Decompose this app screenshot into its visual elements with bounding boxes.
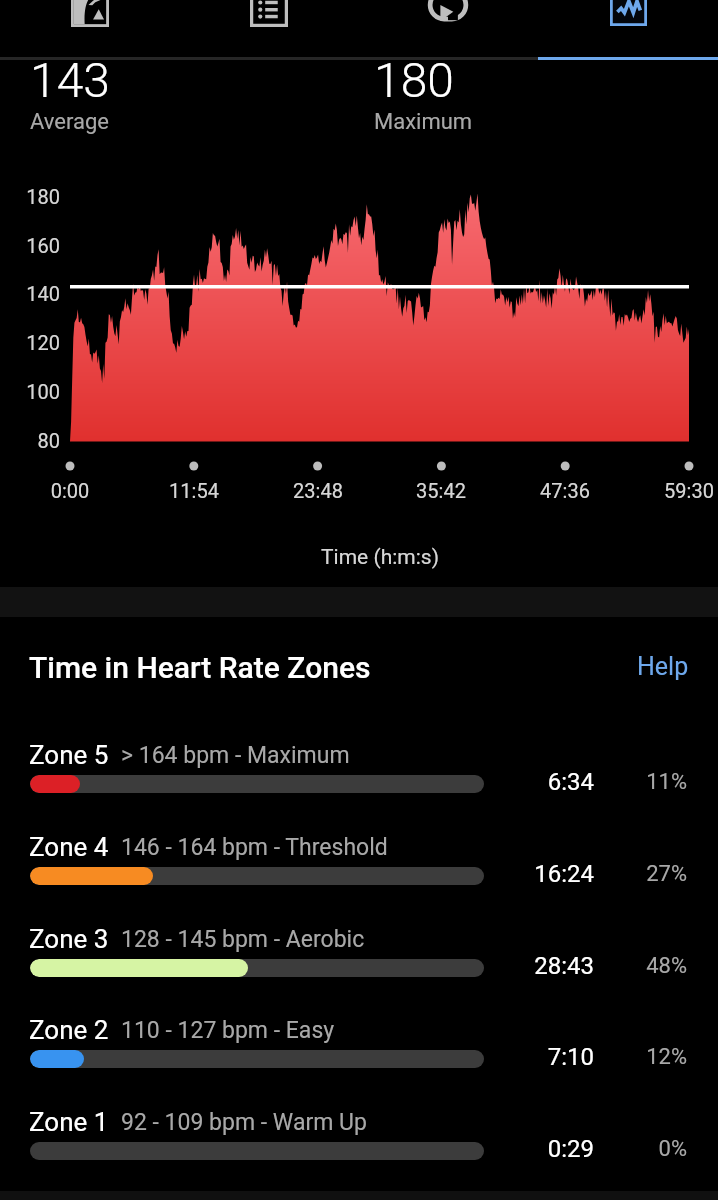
staticText: Zone 5: [29, 740, 109, 770]
staticText: 180: [374, 52, 454, 108]
staticText: Time in Heart Rate Zones: [29, 650, 371, 685]
staticText: 28:43: [474, 952, 594, 980]
staticText: 120: [0, 331, 60, 354]
staticText: 11%: [607, 769, 687, 795]
button[interactable]: Help: [589, 644, 689, 688]
staticText: 11:54: [134, 479, 254, 502]
staticText: 80: [0, 429, 60, 452]
staticText: Zone 1: [29, 1107, 109, 1137]
staticText: Maximum: [374, 109, 473, 135]
button[interactable]: Zone 3: [0, 919, 718, 1007]
staticText: 0:00: [10, 479, 130, 502]
staticText: 110 - 127 bpm - Easy: [121, 1017, 335, 1044]
staticText: 16:24: [474, 860, 594, 888]
staticText: Time (h:m:s): [180, 545, 580, 570]
staticText: 100: [0, 380, 60, 403]
staticText: 48%: [607, 953, 687, 979]
button[interactable]: Details: [179, 0, 358, 57]
staticText: 146 - 164 bpm - Threshold: [121, 834, 388, 861]
button[interactable]: Zone 4: [0, 827, 718, 915]
button[interactable]: Charts: [538, 0, 718, 57]
staticText: Zone 2: [29, 1015, 109, 1045]
staticText: 92 - 109 bpm - Warm Up: [121, 1109, 367, 1136]
staticText: 12%: [607, 1044, 687, 1070]
button[interactable]: Zone 1: [0, 1102, 718, 1190]
staticText: 59:30: [629, 479, 718, 502]
staticText: 35:42: [381, 479, 501, 502]
staticText: Zone 3: [29, 924, 109, 954]
staticText: 0%: [607, 1136, 687, 1162]
staticText: 160: [0, 234, 60, 257]
staticText: 27%: [607, 861, 687, 887]
button[interactable]: Zone 5: [0, 735, 718, 823]
staticText: Average: [30, 109, 110, 135]
button[interactable]: Map: [0, 0, 179, 57]
staticText: 47:36: [505, 479, 625, 502]
staticText: Zone 4: [29, 832, 109, 862]
staticText: 6:34: [474, 768, 594, 796]
staticText: 180: [0, 185, 60, 208]
button[interactable]: Zone 2: [0, 1010, 718, 1098]
button[interactable]: Laps: [358, 0, 538, 57]
staticText: 0:29: [474, 1135, 594, 1163]
staticText: 140: [0, 282, 60, 305]
staticText: 143: [30, 52, 110, 108]
staticText: > 164 bpm - Maximum: [121, 742, 350, 769]
staticText: Help: [637, 652, 689, 681]
staticText: 128 - 145 bpm - Aerobic: [121, 926, 365, 953]
staticText: 7:10: [474, 1043, 594, 1071]
staticText: 23:48: [258, 479, 378, 502]
